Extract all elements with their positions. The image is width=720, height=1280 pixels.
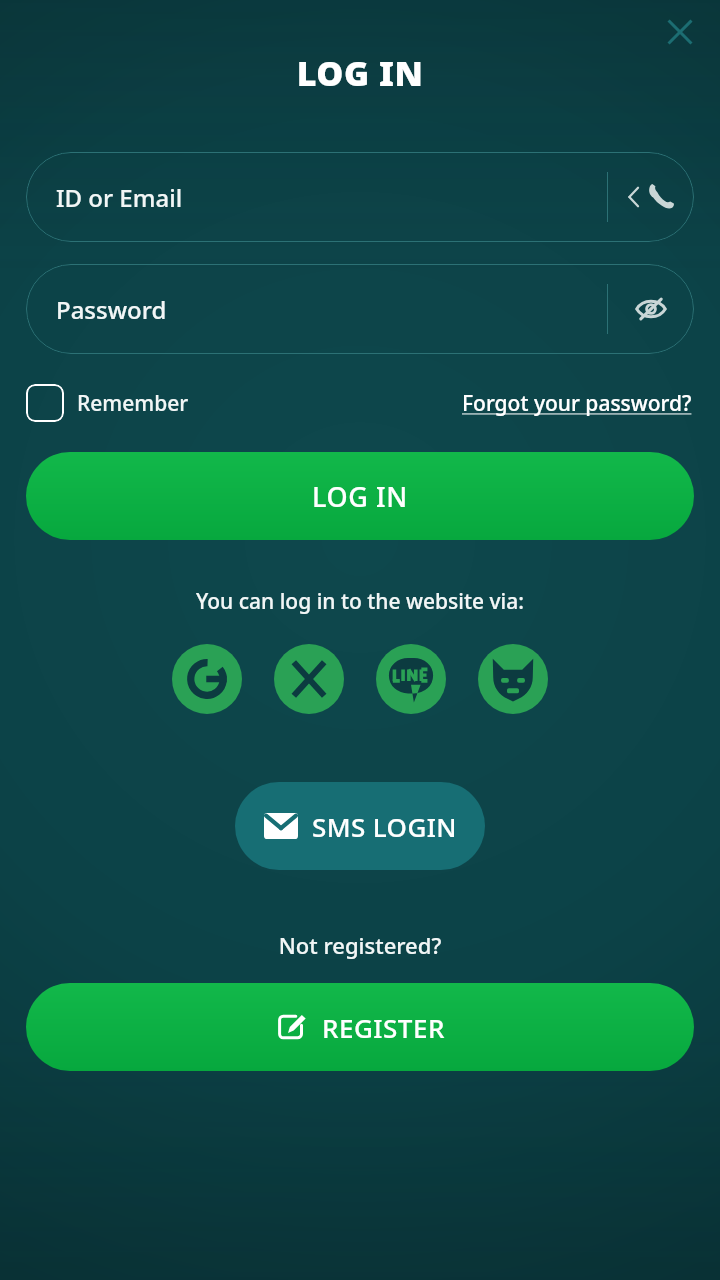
button[interactable]: Sign in with Google	[172, 644, 242, 714]
button[interactable]: Sign in with LINE	[376, 644, 446, 714]
staticText: You can log in to the website via:	[0, 587, 720, 616]
button[interactable]: REGISTER	[26, 983, 694, 1071]
staticText: Forgot your password?	[462, 389, 692, 418]
staticText: LOG IN	[312, 478, 408, 515]
button[interactable]: SMS LOGIN	[235, 782, 485, 870]
staticText: SMS LOGIN	[312, 809, 457, 844]
button[interactable]: Forgot your password?	[460, 385, 694, 422]
button[interactable]: Remember	[26, 384, 195, 422]
button[interactable]: Close	[654, 6, 706, 58]
staticText: LOG IN	[0, 50, 720, 96]
button[interactable]: Password	[26, 264, 694, 354]
staticText: Not registered?	[0, 930, 720, 960]
button[interactable]: LOG IN	[26, 452, 694, 540]
staticText: Password	[56, 293, 607, 326]
staticText: REGISTER	[322, 1010, 445, 1045]
button[interactable]: Sign in with X	[274, 644, 344, 714]
button[interactable]: Switch to phone number	[608, 152, 694, 242]
staticText: Remember	[77, 389, 189, 418]
button[interactable]: ID or Email	[26, 152, 694, 242]
button[interactable]: Show password	[608, 264, 694, 354]
button[interactable]: Sign in with MetaMask	[478, 644, 548, 714]
staticText: ID or Email	[56, 181, 607, 214]
